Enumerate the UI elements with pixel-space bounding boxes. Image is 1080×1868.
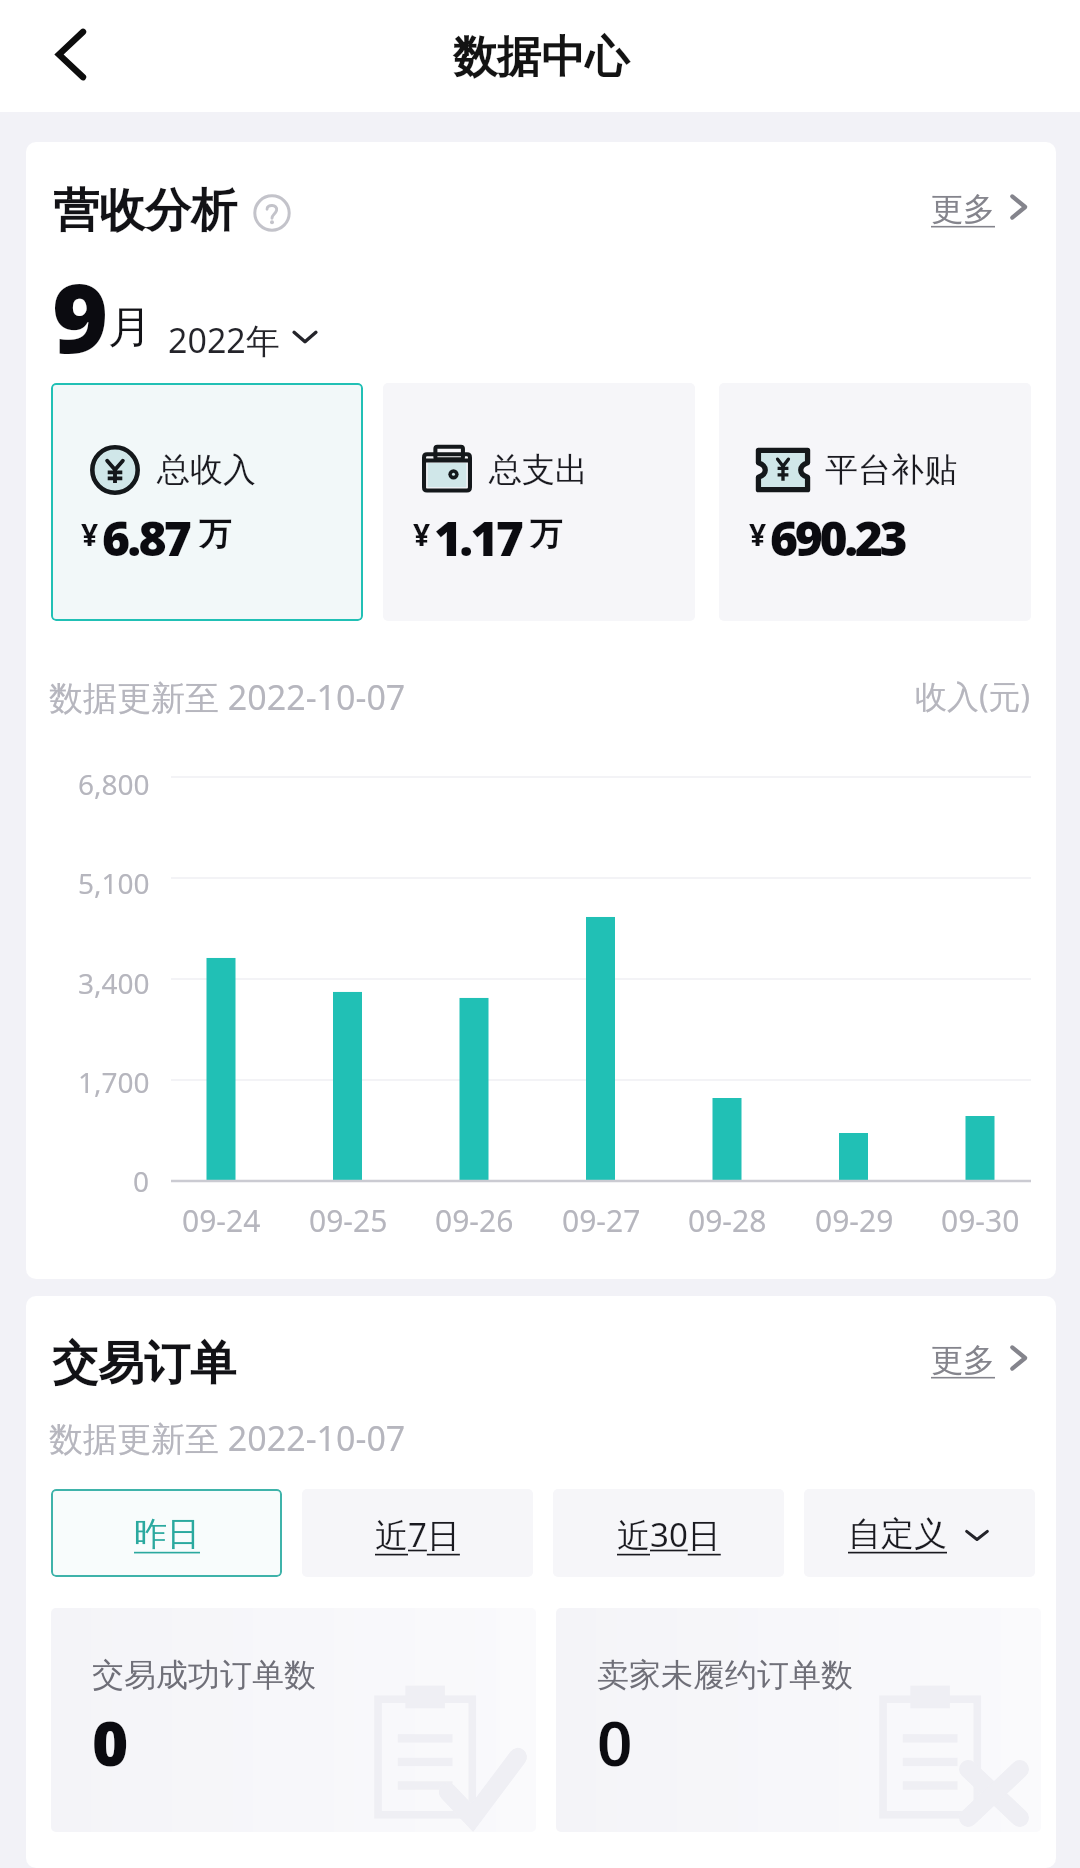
button[interactable]: 平台补贴	[719, 383, 1031, 621]
staticText: ¥	[749, 514, 767, 555]
staticText: 09-24	[182, 1200, 261, 1241]
staticText: 总支出	[489, 449, 588, 491]
staticText: 数据中心	[453, 30, 629, 85]
staticText: 09-27	[562, 1200, 641, 1241]
staticText: 09-30	[941, 1200, 1020, 1241]
staticText: 营收分析	[53, 182, 237, 240]
staticText: 0	[133, 1162, 150, 1200]
staticText: 0	[597, 1700, 633, 1784]
staticText: 09-28	[688, 1200, 767, 1241]
staticText: 2022年	[168, 317, 280, 363]
button[interactable]: 总支出	[383, 383, 695, 621]
staticText: 月	[108, 300, 152, 355]
staticText: 更多	[931, 189, 995, 229]
button[interactable]	[918, 176, 1040, 242]
staticText: ¥	[81, 514, 99, 555]
button[interactable]: Back	[26, 10, 114, 98]
staticText: 09-26	[435, 1200, 514, 1241]
staticText: 交易成功订单数	[92, 1655, 316, 1695]
staticText: 收入(元)	[915, 674, 1031, 718]
staticText: 平台补贴	[825, 449, 957, 491]
staticText: 6,800	[78, 765, 150, 803]
staticText: 自定义	[848, 1513, 947, 1555]
staticText: 万	[530, 514, 562, 554]
staticText: 6.87	[102, 505, 190, 570]
staticText: 交易订单	[52, 1335, 236, 1393]
staticText: 近7日	[375, 1512, 460, 1557]
staticText: 0	[92, 1700, 129, 1784]
button[interactable]: 自定义	[804, 1489, 1035, 1577]
staticText: 3,400	[78, 964, 150, 1002]
button[interactable]: 交易成功订单数	[51, 1608, 536, 1832]
staticText: 690.23	[770, 505, 905, 570]
button[interactable]: 总收入	[51, 383, 363, 621]
staticText: 09-29	[815, 1200, 894, 1241]
staticText: 1,700	[78, 1063, 150, 1101]
button[interactable]: 近30日	[553, 1489, 784, 1577]
staticText: 更多	[931, 1340, 995, 1380]
staticText: ¥	[413, 514, 431, 555]
staticText: 万	[199, 514, 231, 554]
button[interactable]: 近7日	[302, 1489, 533, 1577]
staticText: 数据更新至 2022-10-07	[49, 1415, 406, 1461]
staticText: 数据更新至 2022-10-07	[49, 674, 406, 720]
staticText: 卖家未履约订单数	[597, 1655, 853, 1695]
button[interactable]: 昨日	[51, 1489, 282, 1577]
staticText: 09-25	[309, 1200, 388, 1241]
staticText: 总收入	[157, 449, 256, 491]
staticText: 9	[52, 250, 109, 381]
staticText: 1.17	[434, 505, 522, 570]
staticText: 昨日	[134, 1513, 200, 1555]
staticText: 5,100	[78, 864, 150, 902]
button[interactable]: 卖家未履约订单数	[556, 1608, 1041, 1832]
staticText: 近30日	[617, 1512, 721, 1557]
button[interactable]	[918, 1327, 1040, 1393]
